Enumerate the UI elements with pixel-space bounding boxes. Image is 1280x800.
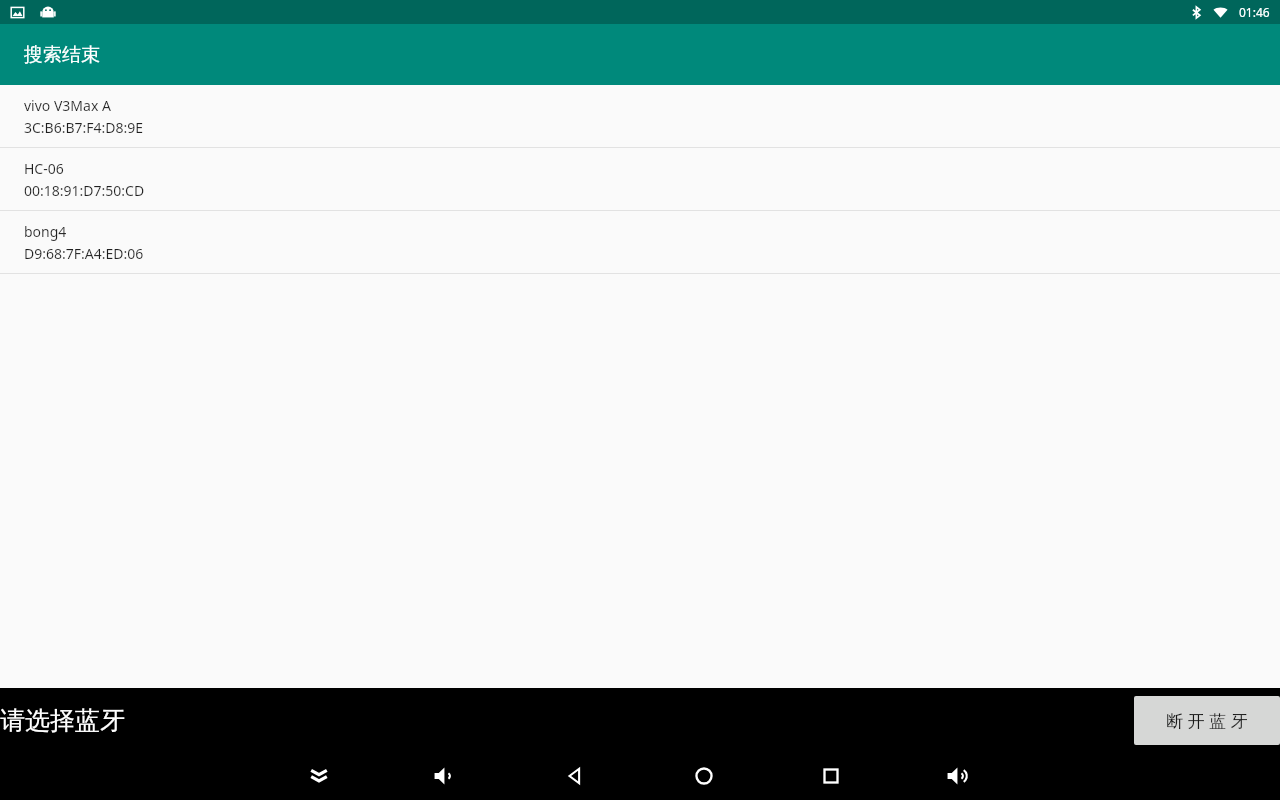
button[interactable]: Hide keyboard <box>295 752 343 800</box>
button[interactable]: Volume down <box>422 752 470 800</box>
button[interactable]: 搜索结束 <box>0 24 1280 85</box>
button[interactable]: 断 开 蓝 牙 <box>1134 696 1280 745</box>
button[interactable]: Back <box>552 752 600 800</box>
staticText: 00:18:91:D7:50:CD <box>24 181 145 200</box>
button[interactable]: Volume up <box>935 752 983 800</box>
staticText: vivo V3Max A <box>24 96 111 115</box>
staticText: bong4 <box>24 222 67 241</box>
button[interactable]: Home <box>680 752 728 800</box>
staticText: HC-06 <box>24 159 64 178</box>
button[interactable]: HC-06 <box>0 148 1280 211</box>
staticText: 请选择蓝牙 <box>0 705 125 736</box>
staticText: 搜索结束 <box>24 43 100 67</box>
staticText: 断 开 蓝 牙 <box>1166 709 1248 732</box>
button[interactable]: Recents <box>807 752 855 800</box>
staticText: 3C:B6:B7:F4:D8:9E <box>24 118 144 137</box>
staticText: D9:68:7F:A4:ED:06 <box>24 244 144 263</box>
staticText: 01:46 <box>1239 4 1270 20</box>
button[interactable]: bong4 <box>0 211 1280 274</box>
button[interactable]: vivo V3Max A <box>0 85 1280 148</box>
